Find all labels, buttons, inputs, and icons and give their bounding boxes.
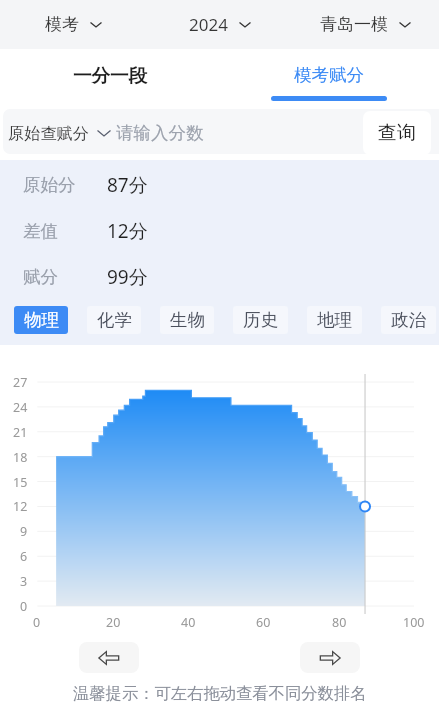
button[interactable]: 上一页: [79, 642, 139, 673]
staticText: 赋分: [23, 266, 58, 288]
staticText: 0: [33, 614, 41, 631]
staticText: 差值: [23, 220, 58, 242]
button[interactable]: 模考赋分: [219, 49, 439, 105]
staticText: 查询: [378, 121, 416, 145]
staticText: 物理: [24, 309, 59, 331]
staticText: 20: [106, 614, 121, 631]
button[interactable]: 青岛一模: [312, 8, 420, 41]
button[interactable]: 化学: [87, 306, 141, 334]
staticText: 27: [13, 374, 28, 391]
staticText: 87分: [107, 172, 148, 198]
staticText: 化学: [97, 309, 132, 331]
staticText: 18: [13, 449, 28, 466]
staticText: 9: [20, 523, 28, 540]
staticText: 80: [332, 614, 347, 631]
button[interactable]: 下一页: [300, 642, 360, 673]
staticText: 历史: [243, 309, 278, 331]
button[interactable]: 地理: [307, 306, 362, 334]
staticText: 原始查赋分: [8, 123, 89, 143]
staticText: 请输入分数: [116, 122, 204, 144]
staticText: 生物: [170, 309, 205, 331]
button[interactable]: 查询: [363, 111, 431, 155]
button[interactable]: 物理: [14, 306, 68, 334]
staticText: 一分一段: [73, 64, 147, 87]
staticText: 政治: [391, 309, 426, 331]
staticText: 模考: [45, 14, 79, 35]
staticText: 21: [13, 424, 28, 441]
staticText: 地理: [317, 309, 352, 331]
button[interactable]: 2024: [181, 7, 260, 42]
staticText: 60: [256, 614, 271, 631]
staticText: 青岛一模: [320, 14, 388, 35]
staticText: 2024: [189, 13, 228, 36]
staticText: 模考赋分: [294, 64, 364, 86]
button[interactable]: 政治: [381, 306, 436, 334]
button[interactable]: 历史: [233, 306, 288, 334]
staticText: 6: [20, 548, 28, 565]
staticText: 24: [13, 399, 28, 416]
button[interactable]: 原始查赋分: [8, 117, 112, 149]
staticText: 12分: [107, 218, 148, 244]
staticText: 原始分: [23, 174, 76, 196]
staticText: 温馨提示：可左右拖动查看不同分数排名: [73, 683, 367, 704]
staticText: 12: [13, 498, 28, 515]
staticText: 99分: [107, 264, 148, 290]
staticText: 40: [181, 614, 196, 631]
button[interactable]: 一分一段: [0, 49, 219, 105]
staticText: 0: [20, 598, 28, 615]
staticText: 100: [403, 614, 425, 631]
button[interactable]: 模考: [37, 8, 111, 41]
button[interactable]: 生物: [160, 306, 214, 334]
staticText: 3: [20, 573, 28, 590]
staticText: 15: [13, 474, 28, 491]
